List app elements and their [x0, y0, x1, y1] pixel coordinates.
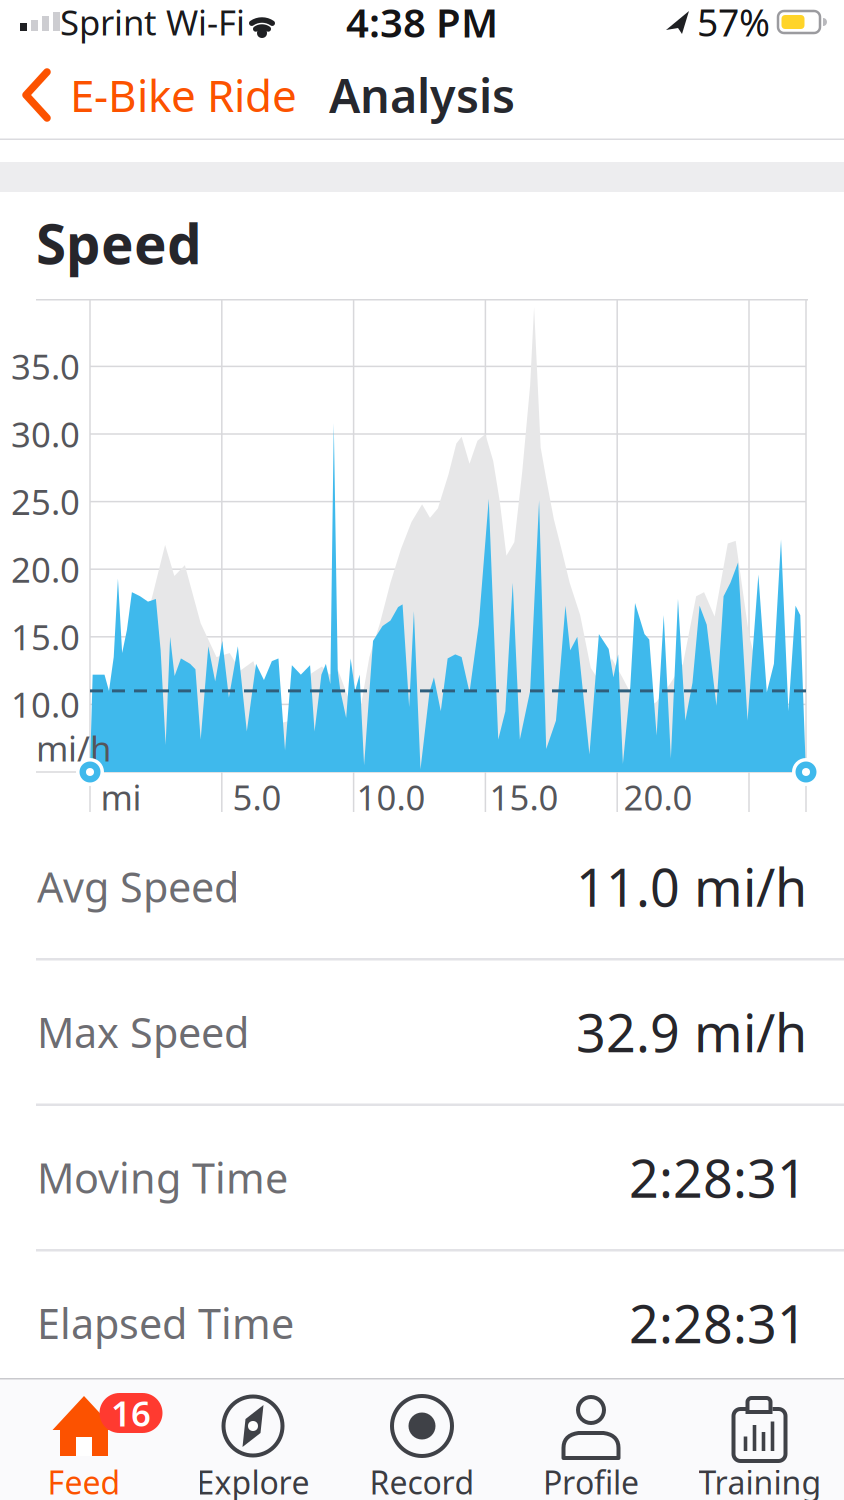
staticText: 15.0 — [11, 614, 80, 660]
staticText: 57% — [697, 0, 770, 47]
staticText: Feed — [47, 1461, 120, 1500]
staticText: Record — [369, 1461, 474, 1500]
button[interactable]: Training — [675, 1378, 844, 1500]
button[interactable]: Explore — [168, 1378, 337, 1500]
staticText: 16 — [111, 1390, 151, 1436]
staticText: E-Bike Ride — [70, 66, 297, 124]
staticText: 25.0 — [11, 479, 80, 525]
staticText: Elapsed Time — [37, 1296, 294, 1350]
staticText: 15.0 — [489, 774, 558, 820]
staticText: 11.0 mi/h — [576, 852, 807, 921]
staticText: 30.0 — [11, 411, 80, 457]
staticText: 5.0 — [232, 774, 281, 820]
staticText: 2:28:31 — [629, 1288, 807, 1358]
button[interactable]: Back — [14, 65, 314, 125]
button[interactable]: 16 — [0, 1378, 168, 1500]
staticText: 35.0 — [11, 343, 80, 389]
staticText: 10.0 — [11, 681, 80, 727]
staticText: 2:28:31 — [629, 1143, 807, 1212]
staticText: Sprint Wi-Fi — [60, 0, 245, 45]
staticText: mi/h — [36, 725, 111, 771]
staticText: Explore — [196, 1461, 309, 1500]
staticText: 10.0 — [356, 774, 425, 820]
staticText: mi — [100, 774, 141, 820]
staticText: 4:38 PM — [346, 0, 498, 48]
staticText: Avg Speed — [37, 859, 239, 914]
button[interactable]: Record — [337, 1378, 506, 1500]
staticText: Max Speed — [37, 1005, 249, 1059]
staticText: Analysis — [329, 64, 515, 126]
staticText: 20.0 — [623, 774, 692, 820]
staticText: 20.0 — [11, 546, 80, 592]
button[interactable]: Profile — [506, 1378, 675, 1500]
staticText: 32.9 mi/h — [576, 997, 807, 1067]
staticText: Profile — [543, 1461, 639, 1500]
staticText: Moving Time — [37, 1150, 288, 1205]
staticText: Training — [698, 1461, 821, 1500]
staticText: Speed — [36, 207, 202, 279]
